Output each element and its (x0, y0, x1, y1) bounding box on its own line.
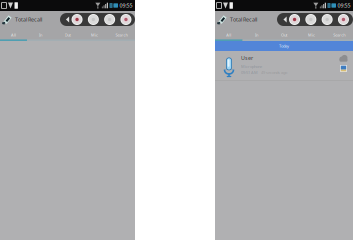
button[interactable]: Delete (120, 14, 131, 25)
staticText: Search (333, 32, 345, 37)
staticText: Out (64, 32, 70, 37)
staticText: In (255, 32, 258, 37)
staticText: User (241, 54, 253, 62)
button[interactable]: Record (289, 14, 300, 25)
staticText: Microphone (241, 64, 262, 69)
button[interactable]: More options (281, 13, 289, 26)
button[interactable]: Search (108, 30, 135, 39)
button[interactable]: Record (71, 14, 82, 25)
staticText: 09:51 AM (241, 70, 258, 75)
staticText: Today (279, 43, 289, 49)
button[interactable]: Search (325, 30, 353, 39)
staticText: Mic (91, 32, 98, 37)
button[interactable]: All (215, 30, 243, 39)
staticText: 09:55 (119, 2, 132, 9)
staticText: 09:55 (337, 2, 350, 9)
button[interactable]: All (0, 30, 27, 39)
button[interactable]: Play (88, 14, 99, 25)
staticText: Mic (308, 32, 315, 37)
button[interactable]: Mic (298, 30, 325, 39)
staticText: Search (115, 32, 127, 37)
button[interactable]: Out (270, 30, 298, 39)
button[interactable]: Stop (322, 14, 333, 25)
button[interactable]: Out (54, 30, 81, 39)
staticText: All (226, 32, 231, 37)
button[interactable]: Stop (104, 14, 115, 25)
button[interactable]: In (27, 30, 54, 39)
button[interactable]: More options (63, 13, 71, 26)
staticText: 49 seconds ago (261, 70, 287, 75)
staticText: Total Recall (230, 16, 257, 23)
button[interactable]: In (243, 30, 270, 39)
button[interactable]: User (215, 51, 353, 81)
staticText: In (39, 32, 42, 37)
staticText: Total Recall (15, 16, 42, 23)
button[interactable]: Play (305, 14, 316, 25)
staticText: All (11, 32, 16, 37)
button[interactable]: Delete (338, 14, 349, 25)
staticText: Out (281, 32, 287, 37)
button[interactable]: Mic (81, 30, 108, 39)
